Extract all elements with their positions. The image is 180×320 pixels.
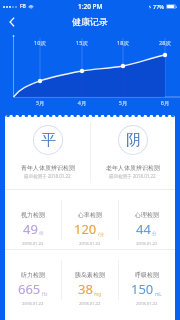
staticText: 44 [136,220,151,238]
staticText: FB [20,3,26,10]
staticText: 2018.01.22 [22,301,44,307]
staticText: 49 [23,220,38,238]
staticText: 18次 [114,39,132,47]
button[interactable]: Back [0,13,24,30]
staticText: 665 [18,280,41,298]
button[interactable]: 心理检测 [118,190,175,249]
staticText: 2018.01.22 [79,301,101,307]
staticText: 1:20 PM [78,2,103,11]
button[interactable]: 心率检测 [61,190,118,249]
staticText: 6月 [156,99,174,107]
button[interactable]: 视力检测 [5,190,61,249]
staticText: 28次 [156,39,174,47]
button[interactable]: 听力检测 [5,250,61,309]
staticText: 4月 [73,99,91,107]
button[interactable]: 平 [5,116,90,189]
staticText: 2018.01.22 [22,241,44,247]
staticText: 5月 [114,99,132,107]
staticText: 2018.01.22 [79,241,101,247]
staticText: 视力检测 [21,211,45,219]
staticText: 10次 [31,39,49,47]
button[interactable]: 胰岛素检测 [61,250,118,309]
staticText: /分 [98,231,105,237]
staticText: 分 [152,231,157,237]
staticText: 健康记录 [72,16,108,27]
staticText: 平 [41,131,56,150]
staticText: 呼吸检测 [135,271,159,279]
staticText: 15次 [73,39,91,47]
staticText: mL [155,291,162,297]
button[interactable]: 呼吸检测 [118,250,175,309]
staticText: 胰岛素检测 [75,271,105,279]
button[interactable]: 阴 [90,116,175,189]
staticText: 心理检测 [135,211,159,219]
staticText: 青年人体质辨识检测 [21,164,75,172]
staticText: mg [94,291,101,297]
staticText: 38 [78,280,93,298]
staticText: 最后检测于 2018.01.22 [109,173,156,179]
staticText: 度 [39,231,44,237]
staticText: 心率检测 [78,211,102,219]
staticText: 2018.01.22 [136,241,158,247]
staticText: 2018.01.22 [136,301,158,307]
staticText: 3月 [31,99,49,107]
staticText: 120 [74,220,97,238]
staticText: 老年人体质辨识检测 [106,164,160,172]
staticText: 阴 [126,131,141,150]
staticText: 最后检测于 2018.01.22 [24,173,71,179]
staticText: 听力检测 [21,271,45,279]
staticText: 150 [131,280,154,298]
staticText: Hz [42,291,48,297]
staticText: 77% [153,3,164,10]
